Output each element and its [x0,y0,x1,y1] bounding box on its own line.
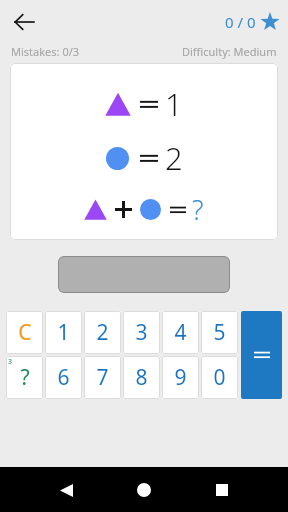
button[interactable]: 9 [162,356,199,399]
staticText: Mistakes: 0/3 [11,44,80,59]
staticText: C [18,318,32,347]
staticText: ? [192,191,204,228]
staticText: 2 [165,137,183,179]
staticText: 2 [96,318,109,347]
button[interactable]: Back [8,6,40,38]
staticText: 3 [135,318,148,347]
staticText: 3 [8,357,13,367]
staticText: 5 [213,318,226,347]
staticText: 0 / 0 [225,12,256,32]
button[interactable]: 1 [45,311,82,354]
button[interactable]: 5 [201,311,238,354]
button[interactable]: 0 [201,356,238,399]
staticText: 6 [57,363,70,392]
button[interactable]: 4 [162,311,199,354]
button[interactable]: 0 / 0 [225,12,280,32]
button[interactable]: Recents [208,476,236,504]
button[interactable]: 7 [84,356,121,399]
staticText: 8 [135,363,148,392]
staticText: 0 [213,363,226,392]
button[interactable]: C [6,311,43,354]
button[interactable]: Back [52,476,80,504]
button[interactable]: Home [130,476,158,504]
button[interactable]: 6 [45,356,82,399]
button[interactable]: 8 [123,356,160,399]
staticText: ? [20,363,30,392]
staticText: 1 [165,83,183,125]
staticText: Difficulty: Medium [182,44,277,59]
staticText: 1 [57,318,70,347]
button[interactable]: Answer input [58,256,230,293]
staticText: 9 [174,363,187,392]
button[interactable]: ? [6,356,43,399]
button[interactable]: 2 [84,311,121,354]
button[interactable]: Equals, submit answer [241,311,282,399]
button[interactable]: 3 [123,311,160,354]
staticText: 7 [96,363,109,392]
staticText: 4 [174,318,187,347]
